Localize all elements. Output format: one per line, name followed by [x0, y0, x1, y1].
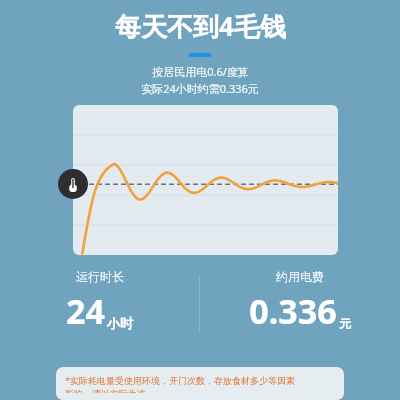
button[interactable]: Temperature — [58, 169, 88, 199]
staticText: 运行时长 — [76, 269, 124, 284]
button[interactable]: *实际耗电量受使用环境，开门次数，存放食材多少等因素 — [56, 367, 344, 400]
staticText: 约用电费 — [276, 269, 324, 284]
staticText: 元 — [339, 316, 351, 331]
staticText: 按居民用电0.6/度算 — [152, 64, 249, 79]
button[interactable]: 约用电费 — [200, 269, 400, 334]
button[interactable]: 运行时长 — [0, 269, 199, 334]
staticText: 实际24小时约需0.336元 — [141, 81, 259, 96]
staticText: 每天不到4毛钱 — [115, 8, 286, 44]
staticText: 0.336 — [249, 288, 337, 334]
staticText: 影响，请以实际为准。 — [65, 388, 155, 393]
staticText: *实际耗电量受使用环境，开门次数，存放食材多少等因素 — [65, 374, 295, 386]
staticText: 小时 — [107, 315, 133, 331]
staticText: 24 — [66, 288, 105, 334]
